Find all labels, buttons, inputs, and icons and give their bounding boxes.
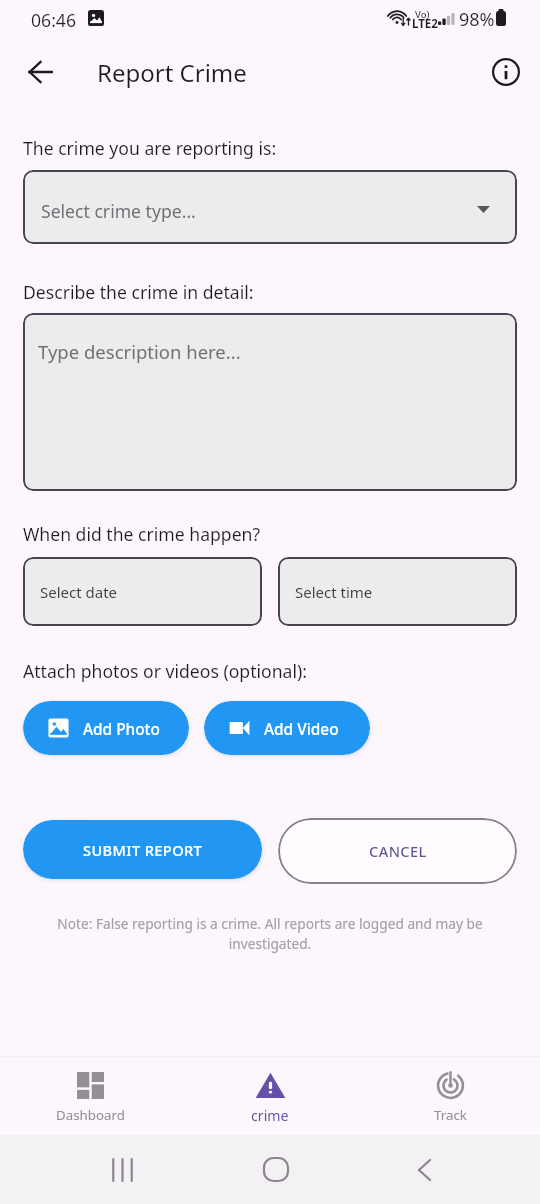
button[interactable]: Back: [16, 48, 64, 96]
staticText: Dashboard: [56, 1106, 125, 1124]
staticText: Attach photos or videos (optional):: [23, 659, 307, 683]
button[interactable]: Select time: [278, 557, 517, 626]
staticText: The crime you are reporting is:: [23, 136, 277, 160]
button[interactable]: Type description here...: [23, 313, 517, 491]
staticText: SUBMIT REPORT: [83, 840, 203, 860]
staticText: 98%: [459, 7, 495, 32]
staticText: crime: [251, 1106, 289, 1125]
staticText: Add Photo: [83, 719, 160, 740]
staticText: When did the crime happen?: [23, 522, 261, 546]
button[interactable]: Add Video: [204, 701, 370, 755]
button[interactable]: Dashboard: [0, 1057, 180, 1135]
staticText: CANCEL: [369, 841, 427, 861]
button[interactable]: Home: [246, 1135, 302, 1204]
staticText: Select date: [40, 582, 118, 602]
button[interactable]: Select crime type...: [23, 170, 517, 244]
staticText: Add Video: [264, 719, 339, 740]
button[interactable]: SUBMIT REPORT: [23, 820, 262, 879]
button[interactable]: CANCEL: [278, 818, 517, 884]
staticText: LTE2: [412, 16, 438, 32]
button[interactable]: Select date: [23, 557, 262, 626]
staticText: Vo): [415, 8, 430, 21]
button[interactable]: Back: [396, 1135, 452, 1204]
staticText: Select crime type...: [41, 199, 196, 223]
button[interactable]: Track: [360, 1057, 540, 1135]
staticText: 06:46: [31, 8, 76, 32]
staticText: Select time: [295, 582, 373, 602]
staticText: Track: [434, 1106, 467, 1124]
staticText: Type description here...: [38, 339, 241, 364]
button[interactable]: Info: [482, 48, 530, 96]
staticText: Note: False reporting is a crime. All re…: [44, 914, 496, 953]
button[interactable]: crime: [180, 1057, 360, 1135]
button[interactable]: Recents: [94, 1135, 150, 1204]
staticText: Report Crime: [97, 56, 247, 89]
staticText: Describe the crime in detail:: [23, 280, 254, 304]
button[interactable]: Add Photo: [23, 701, 189, 755]
